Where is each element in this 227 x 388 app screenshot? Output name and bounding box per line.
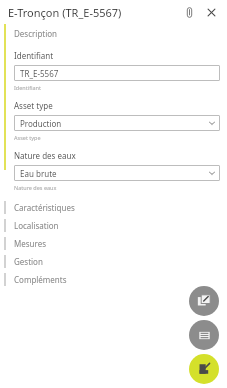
staticText: E-Tronçon (TR_E-5567) — [8, 5, 179, 20]
button[interactable]: Save — [189, 354, 219, 384]
staticText: Mesures — [14, 238, 47, 249]
staticText: Identifiant — [14, 84, 41, 91]
button[interactable]: Attach file — [179, 2, 199, 22]
staticText: Asset type — [14, 134, 41, 141]
button[interactable]: Compléments — [0, 270, 227, 288]
button[interactable]: Eau brute — [14, 165, 220, 181]
staticText: Compléments — [14, 274, 67, 285]
staticText: Nature des eaux — [14, 150, 76, 161]
button[interactable]: TR_E-5567 — [14, 65, 220, 81]
staticText: TR_E-5567 — [20, 68, 59, 79]
button[interactable]: Caractéristiques — [0, 198, 227, 216]
staticText: Identifiant — [14, 50, 54, 61]
staticText: Caractéristiques — [14, 202, 75, 213]
staticText: Eau brute — [20, 168, 57, 179]
staticText: Description — [14, 28, 58, 39]
button[interactable]: Menu — [189, 320, 219, 350]
button[interactable]: Edit copy — [189, 286, 219, 316]
staticText: Production — [20, 118, 62, 129]
button[interactable]: Gestion — [0, 252, 227, 270]
staticText: Asset type — [14, 100, 53, 111]
button[interactable]: Mesures — [0, 234, 227, 252]
staticText: Localisation — [14, 220, 59, 231]
staticText: Gestion — [14, 256, 43, 267]
button[interactable]: Localisation — [0, 216, 227, 234]
button[interactable]: Production — [14, 115, 220, 131]
button[interactable]: Close — [201, 2, 221, 22]
staticText: Nature des eaux — [14, 184, 57, 191]
